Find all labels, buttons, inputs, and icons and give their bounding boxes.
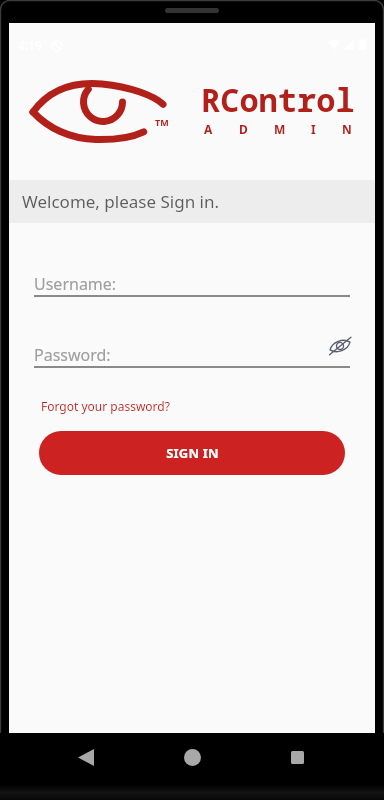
staticText: D	[239, 121, 248, 137]
staticText: Username:	[34, 273, 117, 295]
button[interactable]: Password:	[34, 334, 350, 368]
button[interactable]: Recents	[273, 733, 321, 781]
staticText: Password:	[34, 344, 111, 366]
button[interactable]: Show password	[326, 332, 354, 360]
button[interactable]: Back	[62, 733, 110, 781]
staticText: M	[274, 121, 286, 137]
staticText: SIGN IN	[166, 444, 219, 462]
staticText: TM	[155, 116, 169, 128]
button[interactable]: SIGN IN	[39, 431, 345, 475]
button[interactable]: Home	[168, 733, 216, 781]
staticText: RControl	[201, 78, 355, 122]
staticText: N	[342, 121, 352, 137]
staticText: A	[204, 121, 213, 137]
button[interactable]: Username:	[34, 263, 350, 297]
staticText: I	[311, 121, 316, 137]
staticText: Welcome, please Sign in.	[22, 190, 220, 213]
button[interactable]: Forgot your password?	[41, 398, 170, 414]
